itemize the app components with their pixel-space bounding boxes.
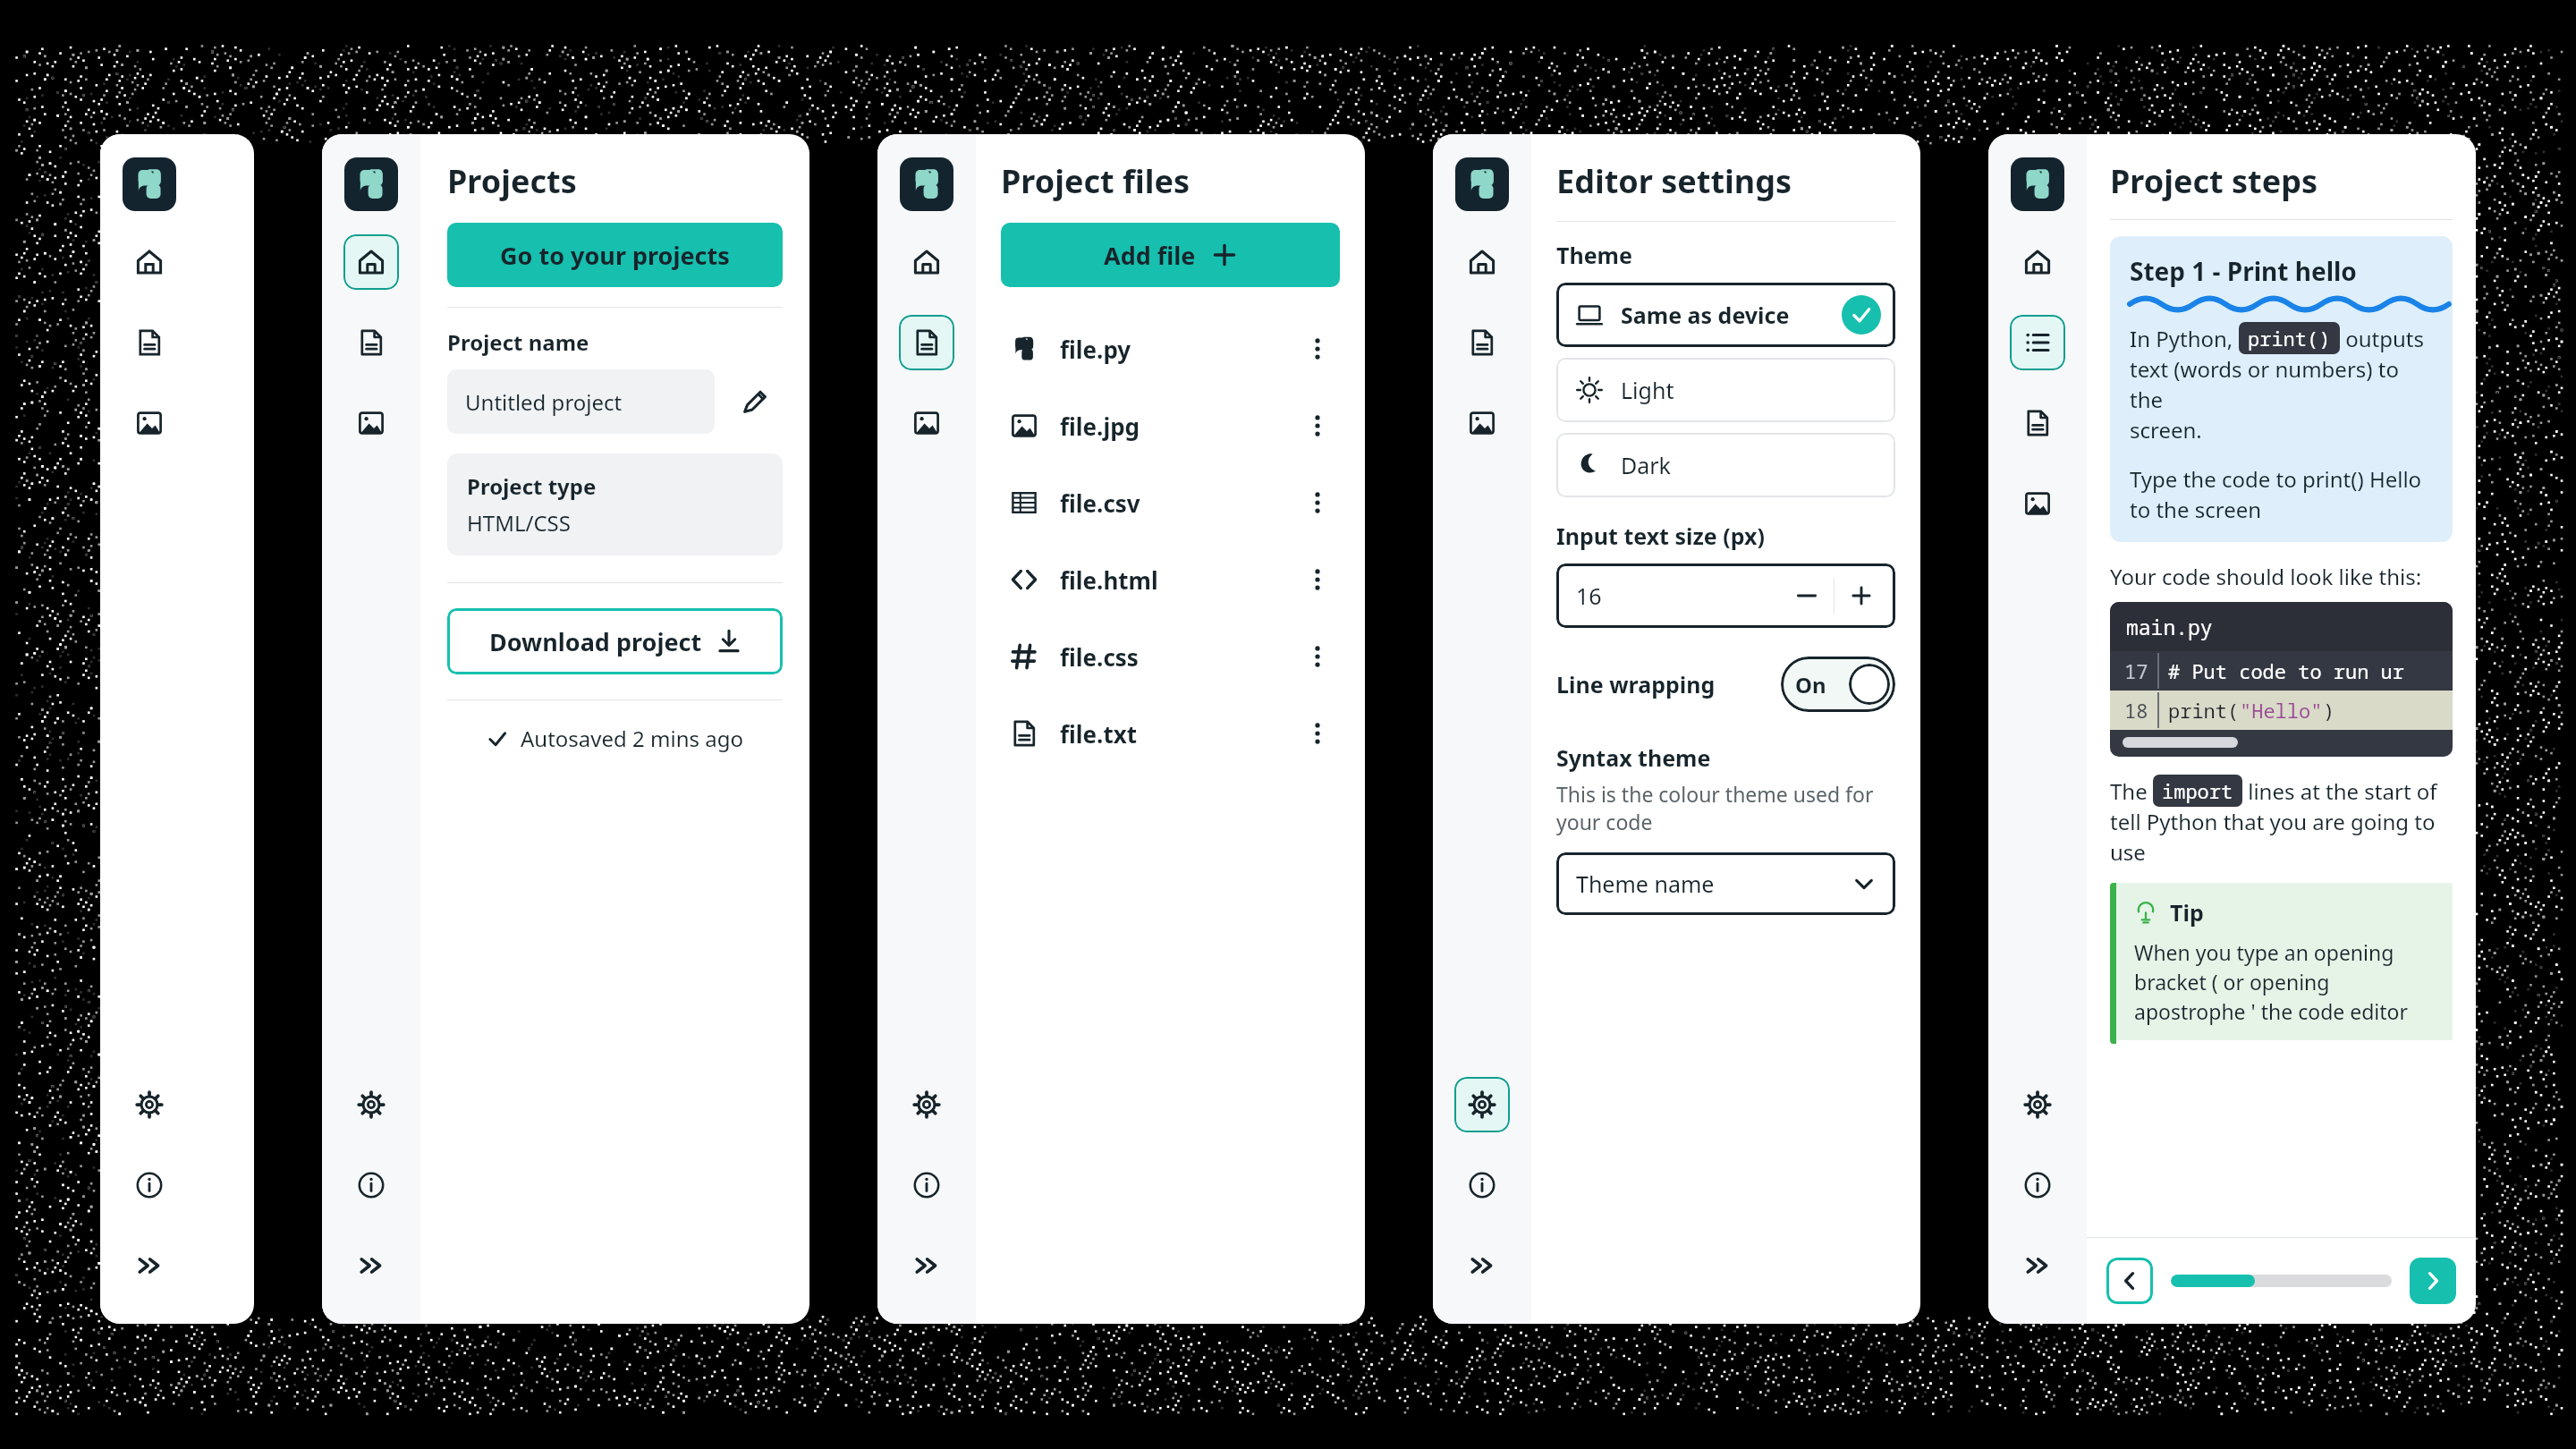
button[interactable]: Navigation item — [1454, 315, 1510, 370]
button[interactable]: file.html — [1001, 541, 1340, 618]
button[interactable]: Navigation item — [2010, 234, 2065, 290]
staticText: The — [2110, 776, 2153, 806]
button[interactable]: Navigation item — [899, 1238, 954, 1293]
button[interactable]: Navigation item — [1454, 1077, 1510, 1132]
staticText: On — [1795, 670, 1826, 699]
button[interactable]: Navigation item — [122, 315, 177, 370]
staticText: 16 — [1576, 580, 1602, 611]
button[interactable]: Previous step — [2106, 1258, 2153, 1304]
staticText: Projects — [447, 159, 577, 203]
staticText: file.py — [1060, 334, 1131, 365]
button[interactable]: Navigation item — [899, 1077, 954, 1132]
button[interactable]: Navigation item — [899, 1157, 954, 1213]
staticText: outputs — [2340, 324, 2425, 353]
button[interactable]: Navigation item — [343, 234, 399, 290]
staticText: import — [2162, 777, 2233, 804]
staticText: "Hello" — [2240, 697, 2323, 724]
button[interactable]: Dark — [1556, 433, 1895, 497]
staticText: In Python, — [2130, 324, 2239, 353]
button[interactable]: Navigation item — [899, 395, 954, 451]
button[interactable]: Increase — [1835, 569, 1888, 623]
button[interactable]: file.jpg — [1001, 387, 1340, 464]
button[interactable]: More options for file.txt — [1295, 711, 1340, 756]
staticText: file.html — [1060, 564, 1158, 596]
button[interactable]: Navigation item — [343, 395, 399, 451]
staticText: Step 1 - Print hello — [2130, 254, 2357, 288]
staticText: Project files — [1001, 159, 1190, 203]
staticText: text (words or numbers) to the screen. — [2130, 354, 2433, 445]
button[interactable]: Navigation item — [343, 1238, 399, 1293]
staticText: Add file — [1104, 239, 1196, 272]
button[interactable]: Navigation item — [343, 1157, 399, 1213]
staticText: lines at the start of — [2242, 776, 2437, 806]
button[interactable]: Navigation item — [343, 1077, 399, 1132]
staticText: 18 — [2124, 697, 2148, 724]
button[interactable]: file.txt — [1001, 695, 1340, 772]
staticText: file.jpg — [1060, 411, 1140, 442]
button[interactable]: More options for file.py — [1295, 326, 1340, 371]
button[interactable]: Navigation item — [2010, 315, 2065, 370]
button[interactable]: Navigation item — [2010, 1077, 2065, 1132]
staticText: Line wrapping — [1556, 669, 1716, 699]
button[interactable]: file.csv — [1001, 464, 1340, 541]
button[interactable]: file.py — [1001, 310, 1340, 387]
button[interactable]: Navigation item — [2010, 1157, 2065, 1213]
button[interactable]: Line wrapping on — [1781, 657, 1895, 712]
staticText: # Put code to run ur — [2168, 657, 2405, 684]
button[interactable]: Python home — [1455, 157, 1509, 211]
button[interactable]: Navigation item — [1454, 395, 1510, 451]
button[interactable]: Navigation item — [1454, 1157, 1510, 1213]
staticText: Tip — [2170, 897, 2204, 928]
staticText: Editor settings — [1556, 159, 1792, 203]
button[interactable]: Python home — [344, 157, 398, 211]
staticText: file.css — [1060, 641, 1139, 673]
staticText: Theme name — [1576, 869, 1715, 899]
staticText: print() — [2248, 325, 2331, 352]
staticText: When you type an opening bracket ( or op… — [2134, 938, 2408, 1026]
staticText: Same as device — [1621, 300, 1790, 330]
staticText: tell Python that you are going to use yo… — [2110, 807, 2453, 867]
button[interactable]: Python home — [123, 157, 176, 211]
staticText: Your code should look like this: — [2110, 562, 2422, 591]
button[interactable]: More options for file.jpg — [1295, 403, 1340, 448]
button[interactable]: Navigation item — [1454, 234, 1510, 290]
button[interactable]: Add file — [1001, 223, 1340, 287]
button[interactable]: Decrease — [1780, 569, 1834, 623]
button[interactable]: Light — [1556, 358, 1895, 422]
button[interactable]: Same as device — [1556, 283, 1895, 347]
staticText: Theme — [1556, 240, 1632, 270]
button[interactable]: Go to your projects — [447, 223, 783, 287]
button[interactable]: Python home — [2011, 157, 2064, 211]
button[interactable]: Navigation item — [899, 315, 954, 370]
button[interactable]: Download project — [447, 608, 783, 674]
button[interactable]: Navigation item — [122, 1238, 177, 1293]
button[interactable]: Navigation item — [1454, 1238, 1510, 1293]
staticText: Go to your projects — [500, 239, 730, 272]
button[interactable]: Theme name — [1556, 852, 1895, 915]
staticText: Dark — [1621, 450, 1671, 480]
staticText: Type the code to print() Hello to the sc… — [2130, 464, 2422, 524]
staticText: Project type — [467, 471, 597, 501]
button[interactable]: file.css — [1001, 618, 1340, 695]
button[interactable]: More options for file.css — [1295, 634, 1340, 679]
button[interactable]: Navigation item — [122, 234, 177, 290]
button[interactable]: Navigation item — [2010, 1238, 2065, 1293]
staticText: main.py — [2126, 613, 2213, 640]
button[interactable]: Edit name — [733, 379, 777, 424]
button[interactable]: Navigation item — [2010, 476, 2065, 531]
staticText: 17 — [2124, 657, 2148, 684]
button[interactable]: Untitled project — [447, 369, 715, 434]
button[interactable]: Navigation item — [2010, 395, 2065, 451]
button[interactable]: More options for file.html — [1295, 557, 1340, 602]
button[interactable]: Navigation item — [122, 1157, 177, 1213]
staticText: Project steps — [2110, 159, 2318, 203]
button[interactable]: Navigation item — [899, 234, 954, 290]
button[interactable]: Python home — [900, 157, 953, 211]
button[interactable]: Navigation item — [343, 315, 399, 370]
button[interactable]: Navigation item — [122, 395, 177, 451]
staticText: This is the colour theme used for your c… — [1556, 780, 1895, 836]
button[interactable]: Navigation item — [122, 1077, 177, 1132]
button[interactable]: Next step — [2410, 1258, 2456, 1304]
button[interactable]: More options for file.csv — [1295, 480, 1340, 525]
staticText: Download project — [489, 625, 702, 658]
